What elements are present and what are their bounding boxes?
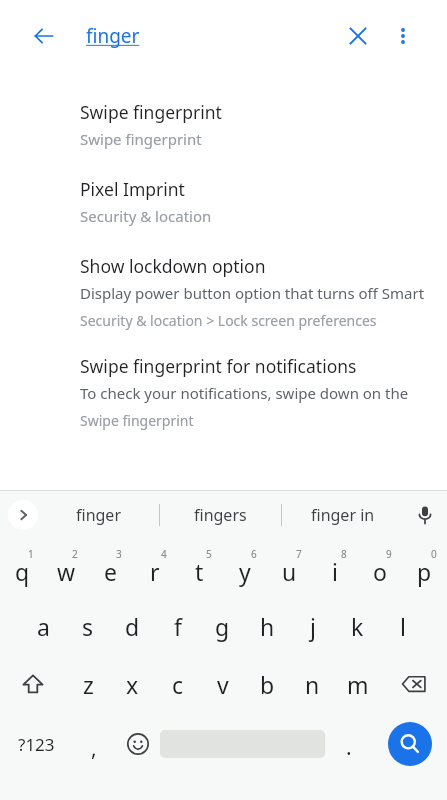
staticText: ?123 xyxy=(18,733,55,756)
staticText: e xyxy=(104,556,117,587)
staticText: n xyxy=(305,669,320,700)
staticText: f xyxy=(174,611,182,642)
button[interactable]: b xyxy=(245,655,290,713)
button[interactable]: 3 xyxy=(88,539,132,597)
staticText: z xyxy=(83,669,94,700)
staticText: 2 xyxy=(72,547,78,561)
button[interactable]: l xyxy=(380,597,425,655)
staticText: t xyxy=(195,556,204,587)
button[interactable]: c xyxy=(155,655,200,713)
button[interactable]: 0 xyxy=(402,539,447,597)
staticText: Security & location xyxy=(80,206,212,226)
staticText: Swipe fingerprint for notifications xyxy=(80,354,357,378)
staticText: r xyxy=(150,556,160,587)
button[interactable]: v xyxy=(200,655,245,713)
staticText: w xyxy=(57,556,76,587)
staticText: m xyxy=(347,669,369,700)
button[interactable]: finger xyxy=(38,491,159,539)
button[interactable]: . xyxy=(325,713,372,775)
staticText: Swipe fingerprint xyxy=(80,129,202,149)
staticText: l xyxy=(400,611,406,642)
staticText: , xyxy=(91,734,97,763)
staticText: c xyxy=(172,669,184,700)
staticText: 0 xyxy=(431,547,437,561)
staticText: p xyxy=(417,556,432,587)
staticText: Swipe fingerprint xyxy=(80,100,222,124)
button[interactable]: Clear search xyxy=(335,13,381,59)
button[interactable]: Search xyxy=(388,722,432,766)
button[interactable]: Swipe fingerprint xyxy=(0,100,447,149)
button[interactable]: 8 xyxy=(312,539,357,597)
button[interactable]: 4 xyxy=(132,539,177,597)
button[interactable]: x xyxy=(110,655,155,713)
button[interactable]: 7 xyxy=(267,539,312,597)
button[interactable]: Swipe fingerprint for notifications xyxy=(0,354,447,430)
staticText: h xyxy=(260,611,275,642)
staticText: Swipe fingerprint xyxy=(80,411,194,430)
button[interactable]: h xyxy=(245,597,290,655)
staticText: finger xyxy=(86,23,140,49)
button[interactable]: ?123 xyxy=(0,713,73,775)
button[interactable]: , xyxy=(73,713,115,775)
staticText: Security & location > Lock screen prefer… xyxy=(80,311,377,330)
staticText: q xyxy=(15,556,30,587)
button[interactable]: j xyxy=(290,597,335,655)
button[interactable]: n xyxy=(290,655,335,713)
staticText: y xyxy=(239,556,251,587)
staticText: Pixel Imprint xyxy=(80,177,185,201)
button[interactable]: Emoji xyxy=(115,713,160,775)
button[interactable]: finger xyxy=(68,10,335,62)
button[interactable]: More options xyxy=(381,14,425,58)
button[interactable]: Voice input xyxy=(403,491,447,539)
button[interactable]: d xyxy=(110,597,155,655)
staticText: 7 xyxy=(296,547,302,561)
staticText: o xyxy=(373,556,387,587)
button[interactable]: f xyxy=(155,597,200,655)
staticText: 8 xyxy=(341,547,347,561)
staticText: fingers xyxy=(194,504,247,526)
staticText: d xyxy=(125,611,140,642)
button[interactable]: Shift xyxy=(0,655,66,713)
button[interactable]: 6 xyxy=(222,539,267,597)
staticText: v xyxy=(217,669,229,700)
staticText: To check your notifications, swipe down … xyxy=(80,383,431,403)
button[interactable]: Show lockdown option xyxy=(0,254,447,330)
button[interactable]: m xyxy=(335,655,380,713)
button[interactable]: g xyxy=(200,597,245,655)
staticText: u xyxy=(282,556,297,587)
staticText: b xyxy=(260,669,275,700)
button[interactable]: a xyxy=(21,597,65,655)
staticText: g xyxy=(215,611,230,642)
button[interactable]: 1 xyxy=(0,539,44,597)
button[interactable]: s xyxy=(65,597,110,655)
button[interactable]: Back xyxy=(20,12,68,60)
staticText: Display power button option that turns o… xyxy=(80,283,431,303)
button[interactable]: 5 xyxy=(177,539,222,597)
button[interactable]: Pixel Imprint xyxy=(0,177,447,226)
staticText: i xyxy=(332,556,338,587)
staticText: 5 xyxy=(206,547,212,561)
button[interactable]: 2 xyxy=(44,539,88,597)
button[interactable]: Backspace xyxy=(380,655,447,713)
staticText: Show lockdown option xyxy=(80,254,266,278)
button[interactable]: k xyxy=(335,597,380,655)
button[interactable]: More suggestions xyxy=(8,500,38,530)
staticText: finger xyxy=(76,504,121,526)
staticText: j xyxy=(310,611,316,642)
staticText: 1 xyxy=(28,547,34,561)
staticText: . xyxy=(346,733,352,762)
staticText: a xyxy=(37,611,50,642)
button[interactable]: 9 xyxy=(357,539,402,597)
staticText: x xyxy=(126,669,139,700)
staticText: 3 xyxy=(116,547,122,561)
staticText: 6 xyxy=(251,547,257,561)
staticText: 9 xyxy=(386,547,392,561)
button[interactable]: z xyxy=(66,655,110,713)
button[interactable]: finger in xyxy=(282,491,403,539)
staticText: s xyxy=(82,611,94,642)
staticText: 4 xyxy=(161,547,167,561)
button[interactable]: fingers xyxy=(160,491,281,539)
staticText: k xyxy=(351,611,364,642)
staticText: finger in xyxy=(311,504,375,526)
